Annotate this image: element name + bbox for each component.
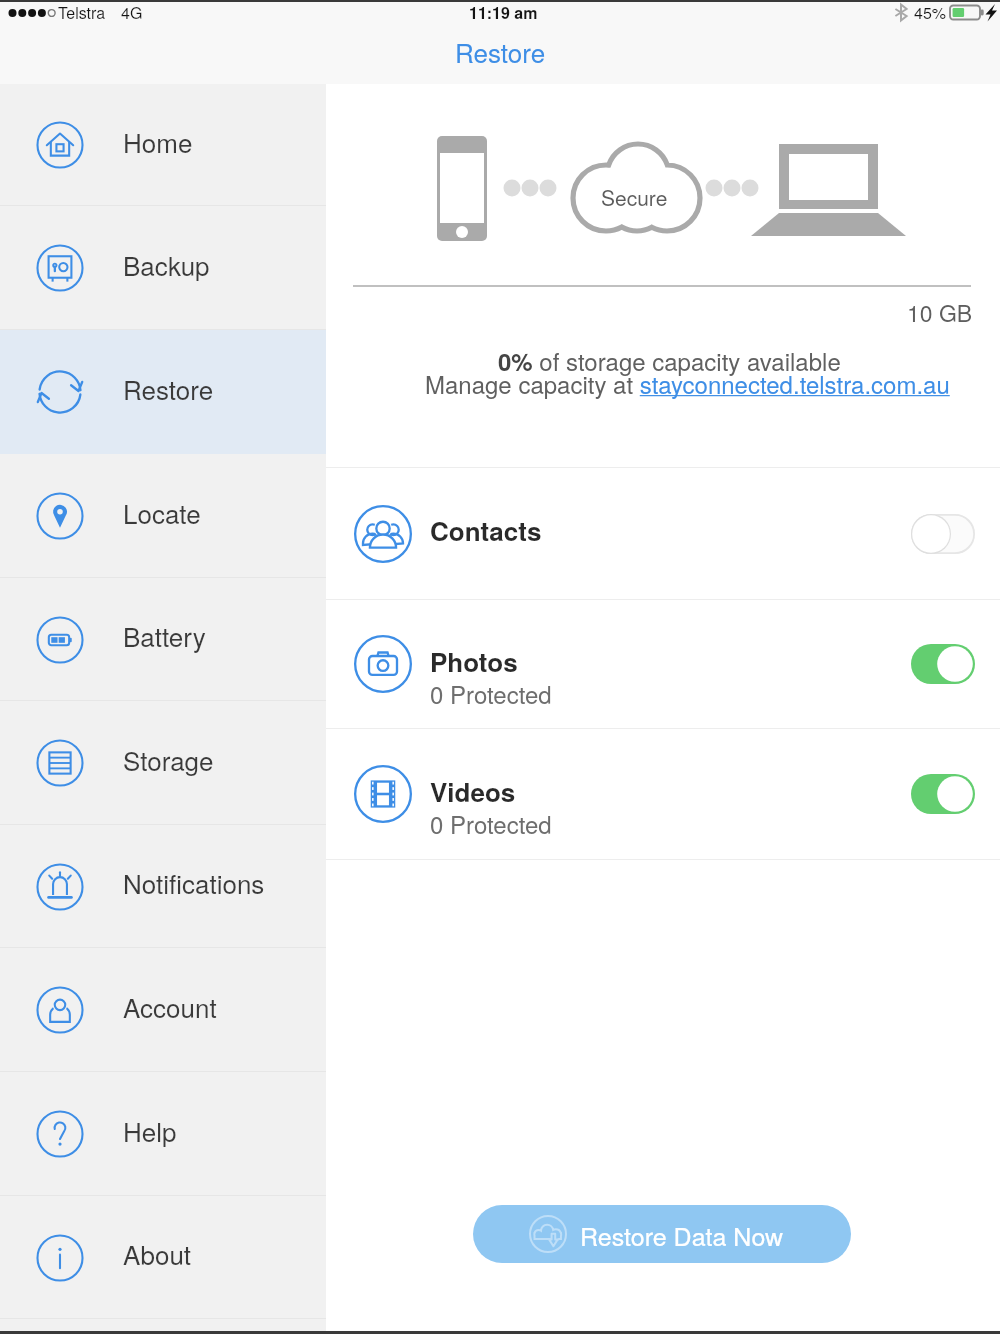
button[interactable]: Backup xyxy=(0,206,326,330)
button[interactable]: Home xyxy=(0,84,326,206)
button[interactable]: Locate xyxy=(0,454,326,578)
button[interactable]: Notifications xyxy=(0,825,326,948)
staticText: 4G xyxy=(121,1,143,24)
staticText: Restore xyxy=(455,33,546,70)
staticText: Videos xyxy=(430,773,516,810)
staticText: Restore Data Now xyxy=(580,1217,784,1253)
button[interactable]: About xyxy=(0,1196,326,1319)
button[interactable]: Contacts xyxy=(326,468,1000,599)
staticText: Storage xyxy=(123,741,214,778)
staticText: 11:19 am xyxy=(469,1,538,24)
button[interactable]: Videos xyxy=(326,729,1000,859)
staticText: Telstra xyxy=(58,1,106,24)
staticText: 45% xyxy=(914,1,947,24)
staticText: Account xyxy=(123,988,217,1025)
staticText: 0 Protected xyxy=(430,806,552,840)
staticText: About xyxy=(123,1235,192,1272)
staticText: Photos xyxy=(430,643,518,680)
staticText: 0 Protected xyxy=(430,676,552,710)
staticText: Manage capacity at stayconnected.telstra… xyxy=(425,366,950,400)
button[interactable]: Account xyxy=(0,948,326,1072)
staticText: Help xyxy=(123,1112,177,1149)
button[interactable]: Storage xyxy=(0,701,326,825)
staticText: Battery xyxy=(123,617,206,654)
staticText: Backup xyxy=(123,246,210,283)
staticText: 0% of storage capacity available xyxy=(498,343,841,378)
button[interactable]: Restore Data Now xyxy=(473,1205,851,1263)
button[interactable]: Battery xyxy=(0,578,326,701)
button[interactable]: Help xyxy=(0,1072,326,1196)
staticText: Locate xyxy=(123,494,201,531)
staticText: Secure xyxy=(601,182,668,212)
button[interactable]: Restore xyxy=(0,330,326,454)
staticText: Restore xyxy=(123,370,214,407)
staticText: Home xyxy=(123,123,193,160)
staticText: 10 GB xyxy=(907,296,973,329)
staticText: Contacts xyxy=(430,512,542,549)
button[interactable]: Photos xyxy=(326,600,1000,728)
staticText: Notifications xyxy=(123,864,265,901)
